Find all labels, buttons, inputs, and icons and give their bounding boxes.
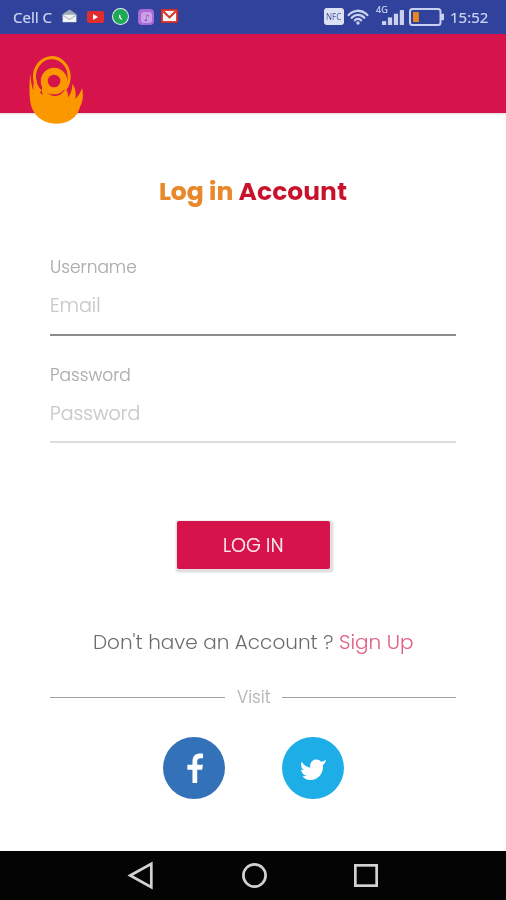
staticText: Password (50, 400, 141, 427)
staticText: 15:52 (450, 7, 489, 27)
staticText: Username (50, 255, 137, 279)
button[interactable]: Back (117, 851, 165, 900)
button[interactable]: Twitter (282, 737, 344, 799)
staticText: Don't have an Account ? (93, 628, 339, 656)
staticText: NFC (326, 11, 342, 22)
staticText: ♪ (144, 13, 150, 23)
staticText: Email (50, 292, 101, 319)
staticText: Visit (237, 685, 271, 709)
staticText: 4G (376, 3, 388, 15)
staticText: Password (50, 363, 131, 387)
button[interactable]: Home (230, 851, 278, 900)
button[interactable]: LOG IN (177, 521, 330, 569)
button[interactable]: Recents (342, 851, 390, 900)
button[interactable]: Facebook (163, 737, 225, 799)
button[interactable]: Sign Up (339, 628, 414, 656)
staticText: Cell C (13, 7, 53, 27)
staticText: LOG IN (223, 532, 284, 559)
staticText: Log in Account (0, 174, 506, 209)
